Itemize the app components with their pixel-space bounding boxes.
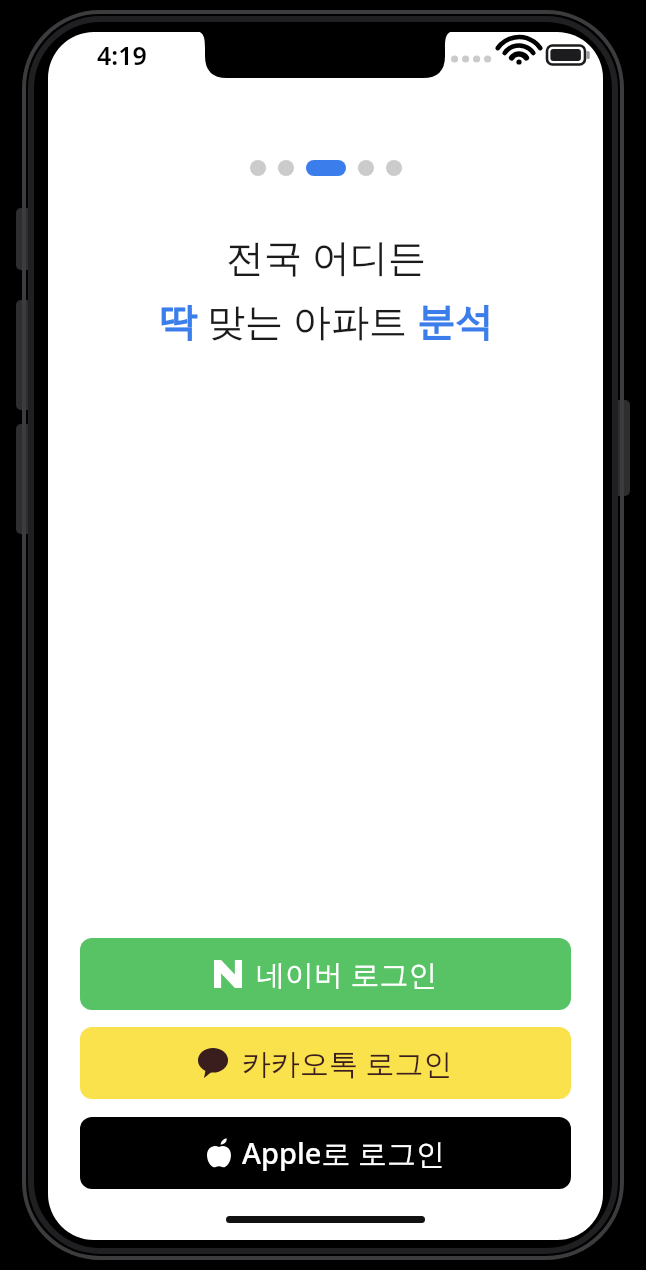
staticText: 네이버 로그인: [256, 954, 438, 994]
button[interactable]: Apple login: [80, 1117, 571, 1189]
button[interactable]: Kakao login: [80, 1027, 571, 1099]
staticText: Apple로 로그인: [242, 1133, 445, 1173]
staticText: 4:19: [97, 38, 147, 72]
button[interactable]: Naver login: [80, 938, 571, 1010]
staticText: 카카오톡 로그인: [242, 1043, 453, 1083]
staticText: 딱 맞는 아파트 분석: [159, 294, 493, 346]
staticText: 전국 어디든: [226, 230, 426, 282]
